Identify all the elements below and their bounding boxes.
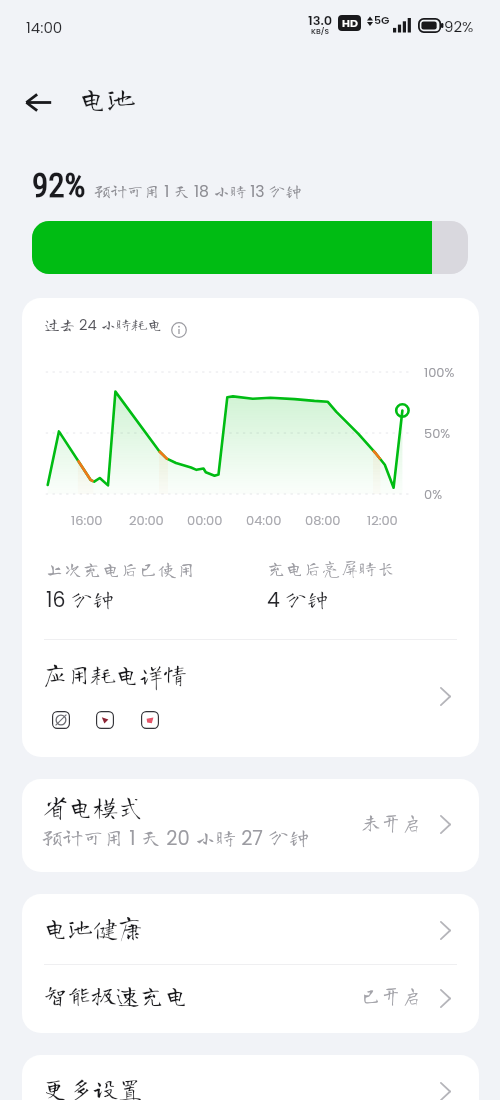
staticText: 20:00 — [129, 511, 164, 529]
staticText: 14:00 — [26, 17, 63, 38]
button[interactable]: 智能极速充电 — [22, 964, 479, 1033]
button[interactable]: 应用耗电详情 — [22, 640, 479, 757]
staticText: 更多设置 — [43, 1076, 144, 1100]
staticText: 充电后亮屏时长 — [267, 559, 396, 577]
staticText: 智能极速充电 — [43, 983, 189, 1007]
button[interactable]: 电池健康 — [22, 894, 479, 964]
staticText: 0% — [424, 485, 443, 503]
staticText: 上次充电后已使用 — [45, 559, 196, 578]
staticText: 应用耗电详情 — [43, 662, 187, 686]
button[interactable]: 更多设置 — [22, 1055, 479, 1100]
staticText: 12:00 — [367, 511, 398, 529]
staticText: 92% — [444, 16, 474, 37]
staticText: 5G — [374, 12, 390, 27]
staticText: 电池健康 — [43, 915, 144, 940]
staticText: 50% — [424, 424, 451, 442]
staticText: 预计可用 1 天 18 小时 13 分钟 — [94, 181, 302, 203]
staticText: 过去 24 小时耗电 — [44, 315, 163, 336]
button[interactable]: 省电模式 — [22, 779, 479, 872]
staticText: 省电模式 — [43, 794, 144, 819]
staticText: HD — [342, 15, 358, 30]
staticText: 13.0 — [308, 11, 333, 29]
staticText: 04:00 — [246, 511, 282, 529]
staticText: 4 分钟 — [267, 586, 329, 615]
staticText: 未开启 — [361, 812, 421, 832]
staticText: 100% — [424, 363, 455, 381]
staticText: 08:00 — [305, 511, 341, 529]
staticText: 92% — [32, 166, 86, 205]
staticText: KB/S — [311, 26, 330, 36]
staticText: 电池 — [78, 83, 137, 112]
button[interactable]: Back — [14, 78, 62, 126]
staticText: 00:00 — [187, 511, 223, 529]
staticText: 16 分钟 — [46, 586, 114, 615]
staticText: 16:00 — [71, 511, 103, 529]
staticText: 已开启 — [361, 985, 421, 1005]
staticText: 预计可用 1 天 20 小时 27 分钟 — [42, 825, 310, 852]
